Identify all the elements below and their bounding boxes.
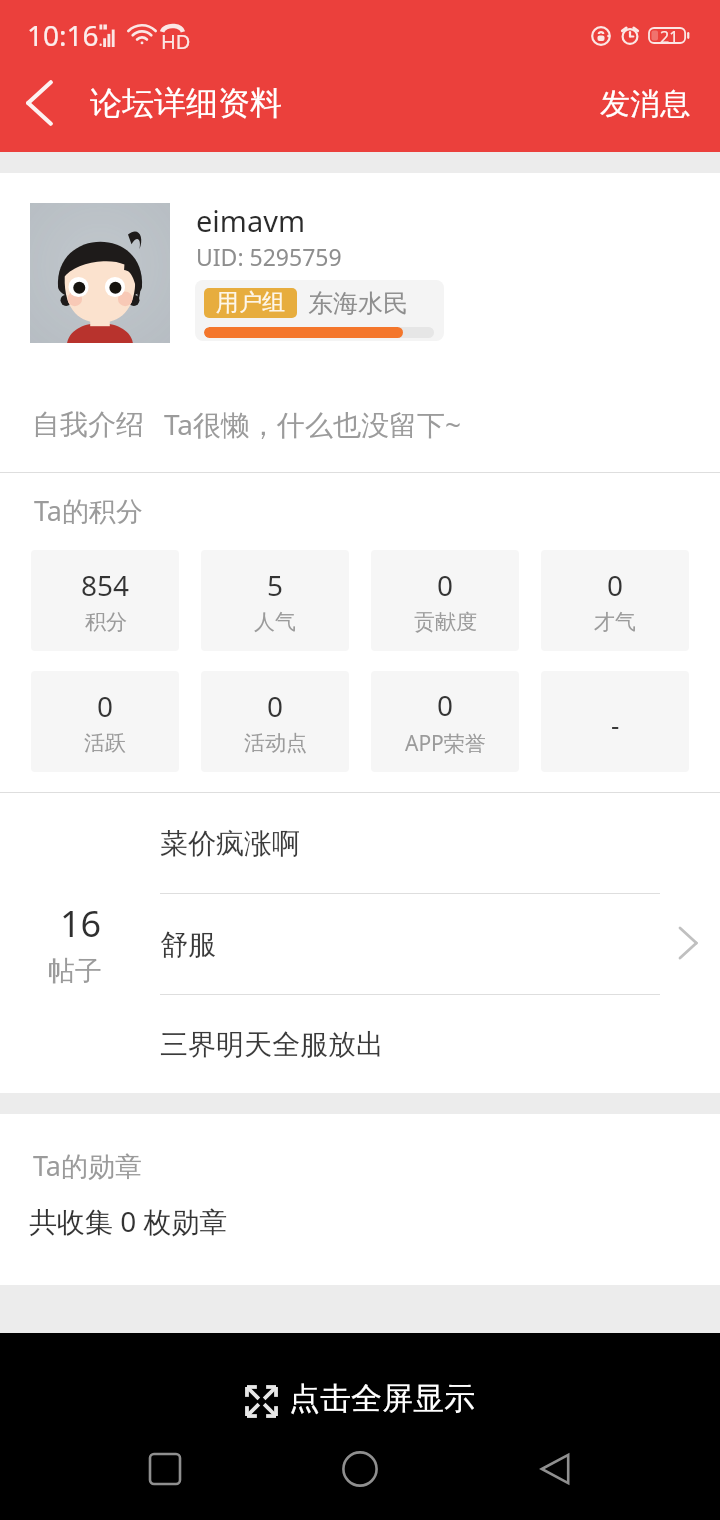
- staticText: 才气: [594, 609, 636, 635]
- button[interactable]: Back: [525, 1439, 585, 1499]
- staticText: 0: [437, 686, 454, 724]
- staticText: 5: [267, 566, 284, 604]
- staticText: 共收集 0 枚勋章: [29, 1202, 228, 1240]
- button[interactable]: Ta的勋章: [0, 1114, 720, 1285]
- staticText: 自我介绍: [32, 407, 144, 442]
- staticText: HD: [161, 28, 191, 54]
- button[interactable]: 0: [201, 671, 349, 772]
- staticText: 帖子: [48, 954, 102, 988]
- staticText: 发消息: [600, 85, 690, 123]
- staticText: -: [611, 707, 620, 742]
- button[interactable]: 0: [371, 550, 519, 651]
- staticText: 积分: [85, 609, 127, 635]
- button[interactable]: 舒服: [160, 894, 660, 994]
- button[interactable]: Home: [330, 1439, 390, 1499]
- button[interactable]: 三界明天全服放出: [160, 995, 660, 1093]
- staticText: 舒服: [160, 927, 216, 962]
- staticText: 人气: [254, 609, 296, 635]
- button[interactable]: 854: [31, 550, 179, 651]
- staticText: 21: [660, 26, 679, 43]
- button[interactable]: 发消息: [570, 76, 720, 152]
- staticText: 0: [607, 566, 624, 604]
- staticText: Ta很懒，什么也没留下~: [164, 405, 462, 443]
- button[interactable]: 点击全屏显示: [0, 1333, 720, 1433]
- staticText: UID: 5295759: [196, 241, 342, 272]
- staticText: 16: [60, 899, 102, 948]
- button[interactable]: 菜价疯涨啊: [160, 793, 660, 893]
- button[interactable]: Back: [0, 76, 76, 152]
- button[interactable]: 0: [31, 671, 179, 772]
- staticText: 论坛详细资料: [90, 83, 282, 123]
- staticText: APP荣誉: [405, 729, 486, 758]
- staticText: 0: [267, 687, 284, 725]
- staticText: 点击全屏显示: [289, 1379, 475, 1418]
- staticText: 活动点: [244, 730, 307, 756]
- button[interactable]: 5: [201, 550, 349, 651]
- button[interactable]: -: [541, 671, 689, 772]
- staticText: 0: [437, 566, 454, 604]
- button[interactable]: 0: [541, 550, 689, 651]
- staticText: Ta的勋章: [33, 1147, 142, 1184]
- staticText: 854: [81, 566, 130, 604]
- staticText: 10:16: [27, 16, 99, 54]
- staticText: 活跃: [84, 730, 126, 756]
- button[interactable]: Recents: [135, 1439, 195, 1499]
- staticText: 菜价疯涨啊: [160, 826, 300, 861]
- button[interactable]: 0: [371, 671, 519, 772]
- button[interactable]: 16: [0, 793, 720, 1093]
- staticText: 用户组: [216, 288, 285, 317]
- staticText: 东海水民: [308, 288, 408, 319]
- staticText: 0: [97, 687, 114, 725]
- button[interactable]: 用户组: [195, 280, 444, 341]
- staticText: eimavm: [196, 201, 306, 240]
- staticText: 三界明天全服放出: [160, 1027, 384, 1062]
- staticText: Ta的积分: [34, 492, 143, 529]
- staticText: 贡献度: [414, 609, 477, 635]
